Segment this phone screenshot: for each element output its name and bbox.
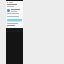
button[interactable] [7,16,22,18]
button[interactable] [7,13,22,15]
other: Avatar [7,9,10,12]
button[interactable] [7,4,22,7]
button[interactable] [7,19,22,22]
button[interactable]: Avatar [7,8,22,12]
